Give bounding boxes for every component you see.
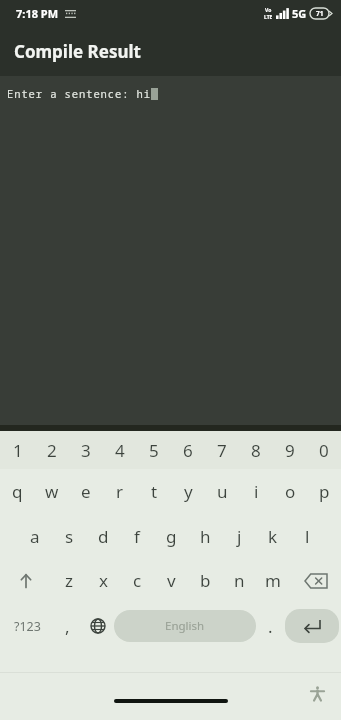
staticText: v [167,569,176,592]
staticText: 4 [115,439,125,462]
staticText: w [45,480,59,503]
button[interactable]: z [52,558,86,603]
staticText: y [184,480,193,503]
button[interactable]: d [86,514,120,558]
staticText: 9 [285,439,295,462]
staticText: o [285,480,296,503]
button[interactable]: a [17,514,52,558]
staticText: i [254,480,259,503]
staticText: LTE [264,14,273,21]
staticText: j [237,525,242,548]
button[interactable]: k [256,514,290,558]
button[interactable]: Change language [82,603,114,649]
button[interactable]: p [307,469,341,514]
button[interactable]: x [86,558,120,603]
button[interactable]: 7 [205,431,239,469]
staticText: English [165,618,205,634]
button[interactable]: 1 [0,431,35,469]
staticText: ?123 [14,618,41,635]
staticText: 71 [316,9,324,18]
button[interactable]: 9 [273,431,307,469]
button[interactable]: l [290,514,324,558]
button[interactable]: n [222,558,256,603]
button[interactable]: g [154,514,188,558]
button[interactable]: j [222,514,256,558]
staticText: q [12,480,23,503]
staticText: , [65,615,70,638]
button[interactable]: . [256,603,285,649]
staticText: Compile Result [14,40,141,63]
button[interactable]: 3 [69,431,103,469]
staticText: t [151,480,158,503]
button[interactable]: u [205,469,239,514]
button[interactable]: Backspace [290,558,341,603]
staticText: k [268,525,278,548]
staticText: u [217,480,228,503]
staticText: Enter a sentence: hi [7,87,151,101]
staticText: h [200,525,211,548]
staticText: 5 [149,439,159,462]
button[interactable]: 5 [137,431,171,469]
button[interactable]: s [52,514,86,558]
staticText: 7:18 PM [16,6,59,21]
button[interactable]: , [53,603,82,649]
button[interactable]: Enter [285,609,339,643]
button[interactable]: English [114,610,256,642]
button[interactable]: 4 [103,431,137,469]
staticText: 8 [251,439,261,462]
button[interactable]: w [35,469,69,514]
staticText: d [98,525,109,548]
button[interactable]: 6 [171,431,205,469]
staticText: 3 [81,439,91,462]
staticText: f [134,525,140,548]
button[interactable]: h [188,514,222,558]
button[interactable]: r [103,469,137,514]
staticText: x [99,569,108,592]
staticText: m [265,569,281,592]
staticText: e [81,480,91,503]
button[interactable]: q [0,469,35,514]
staticText: z [65,569,73,592]
staticText: 7 [217,439,227,462]
staticText: p [319,480,330,503]
button[interactable]: Accessibility [306,682,328,704]
staticText: n [234,569,245,592]
button[interactable]: e [69,469,103,514]
button[interactable]: Shift [0,558,52,603]
staticText: b [200,569,211,592]
staticText: 6 [183,439,193,462]
staticText: Vo [265,7,272,14]
staticText: 0 [319,439,329,462]
staticText: a [30,525,40,548]
staticText: . [268,615,273,638]
button[interactable]: ?123 [2,603,53,649]
button[interactable]: 0 [307,431,341,469]
staticText: r [116,480,124,503]
button[interactable]: Home [114,699,228,703]
button[interactable]: o [273,469,307,514]
staticText: 5G [292,6,307,21]
staticText: c [133,569,142,592]
button[interactable]: y [171,469,205,514]
staticText: l [305,525,310,548]
button[interactable]: m [256,558,290,603]
button[interactable]: v [154,558,188,603]
staticText: s [65,525,74,548]
staticText: 1 [13,439,23,462]
staticText: 2 [47,439,57,462]
button[interactable]: 2 [35,431,69,469]
staticText: g [166,525,177,548]
button[interactable]: b [188,558,222,603]
button[interactable]: 8 [239,431,273,469]
button[interactable]: f [120,514,154,558]
button[interactable]: i [239,469,273,514]
button[interactable]: c [120,558,154,603]
button[interactable]: t [137,469,171,514]
